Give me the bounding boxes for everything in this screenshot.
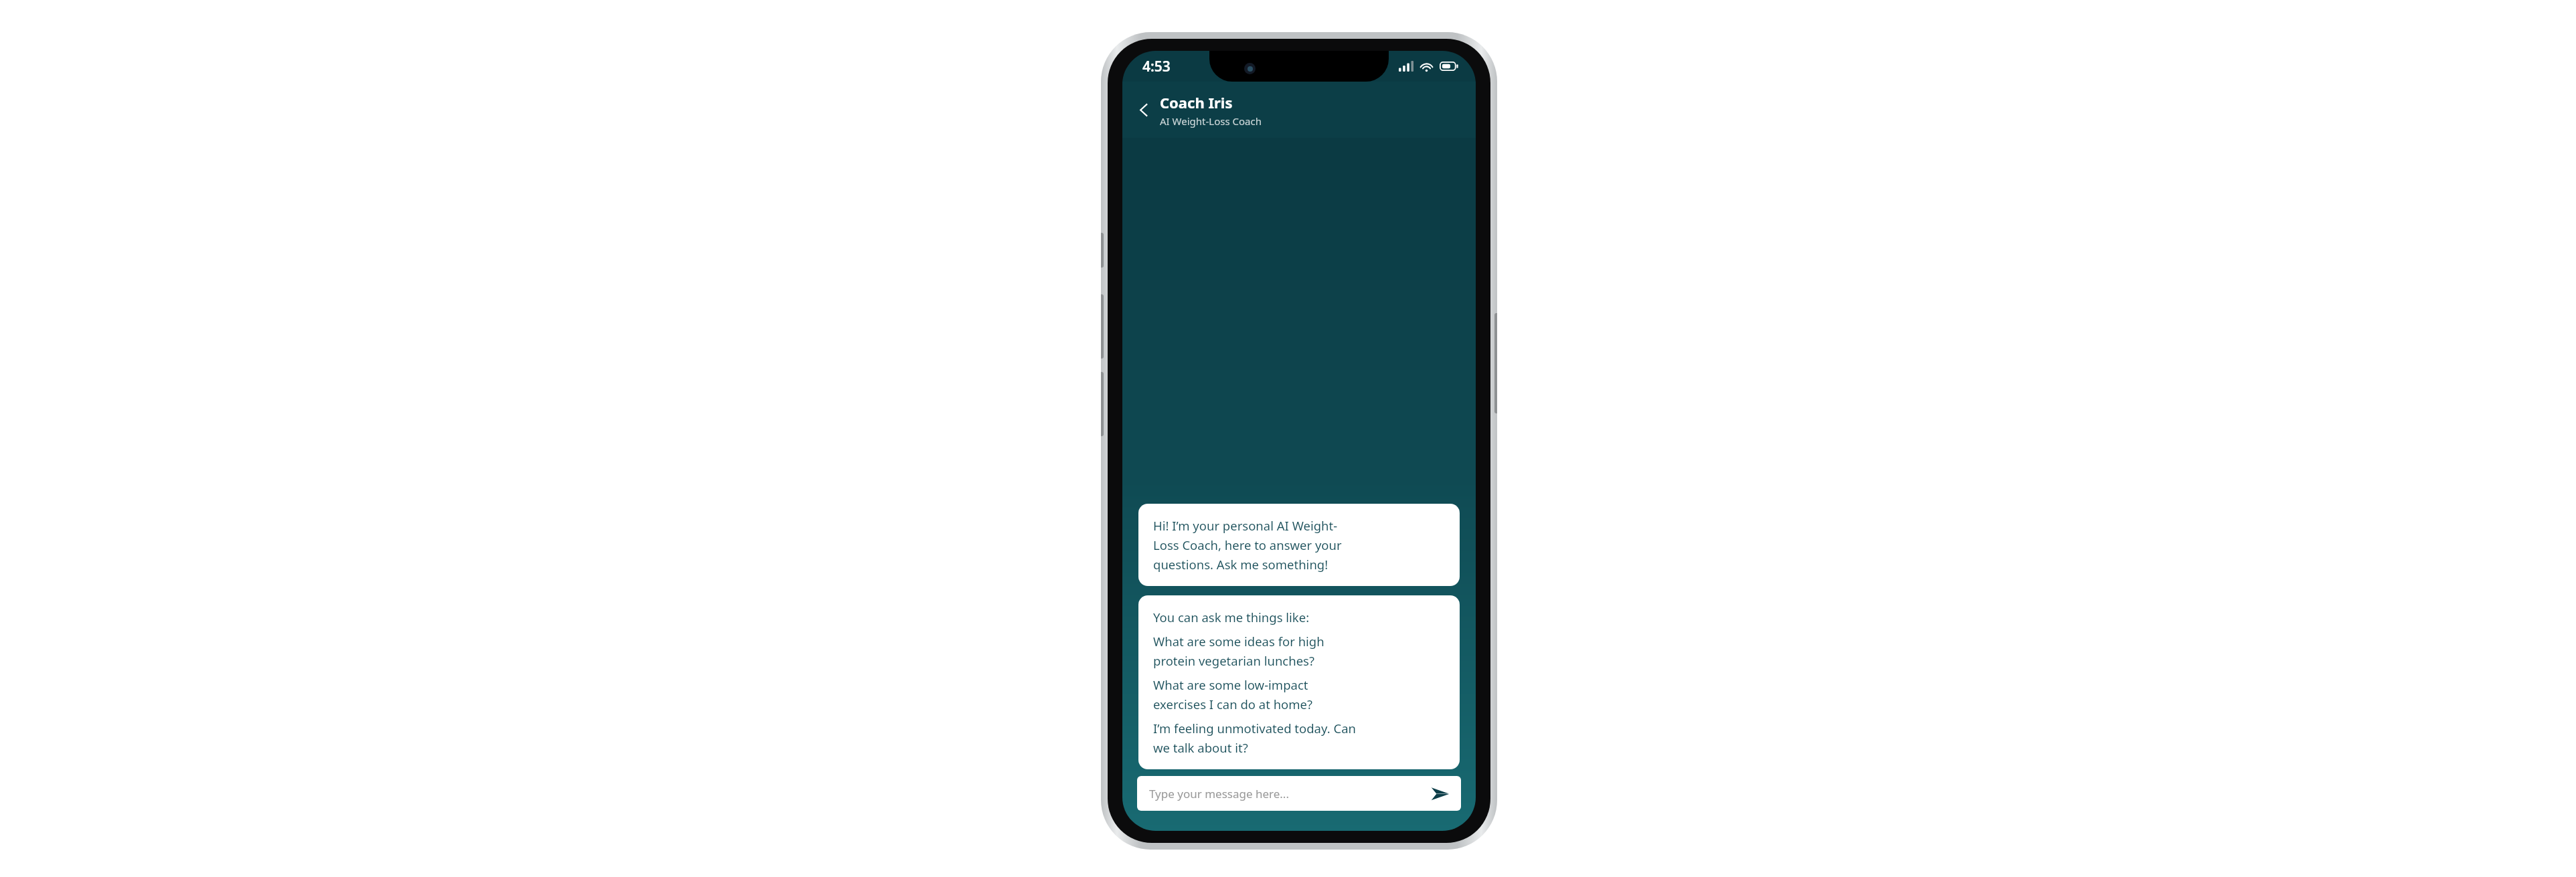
staticText: Hi! I’m your personal AI Weight- Loss Co… [1153,517,1342,573]
button[interactable]: You can ask me things like: [1138,595,1460,769]
staticText: What are some low-impact exercises I can… [1153,676,1313,712]
button[interactable]: Type your message here... [1137,776,1461,811]
staticText: What are some ideas for high protein veg… [1153,633,1324,669]
staticText: AI Weight-Loss Coach [1160,114,1262,128]
button[interactable]: Back [1129,95,1158,124]
staticText: I’m feeling unmotivated today. Can we ta… [1153,720,1356,756]
button[interactable]: Hi! I’m your personal AI Weight- Loss Co… [1138,504,1460,586]
staticText: You can ask me things like: [1153,609,1310,625]
button[interactable]: Send [1425,779,1454,808]
staticText: 4:53 [1142,57,1171,76]
staticText: Coach Iris [1160,92,1233,112]
staticText: Type your message here... [1149,786,1425,801]
